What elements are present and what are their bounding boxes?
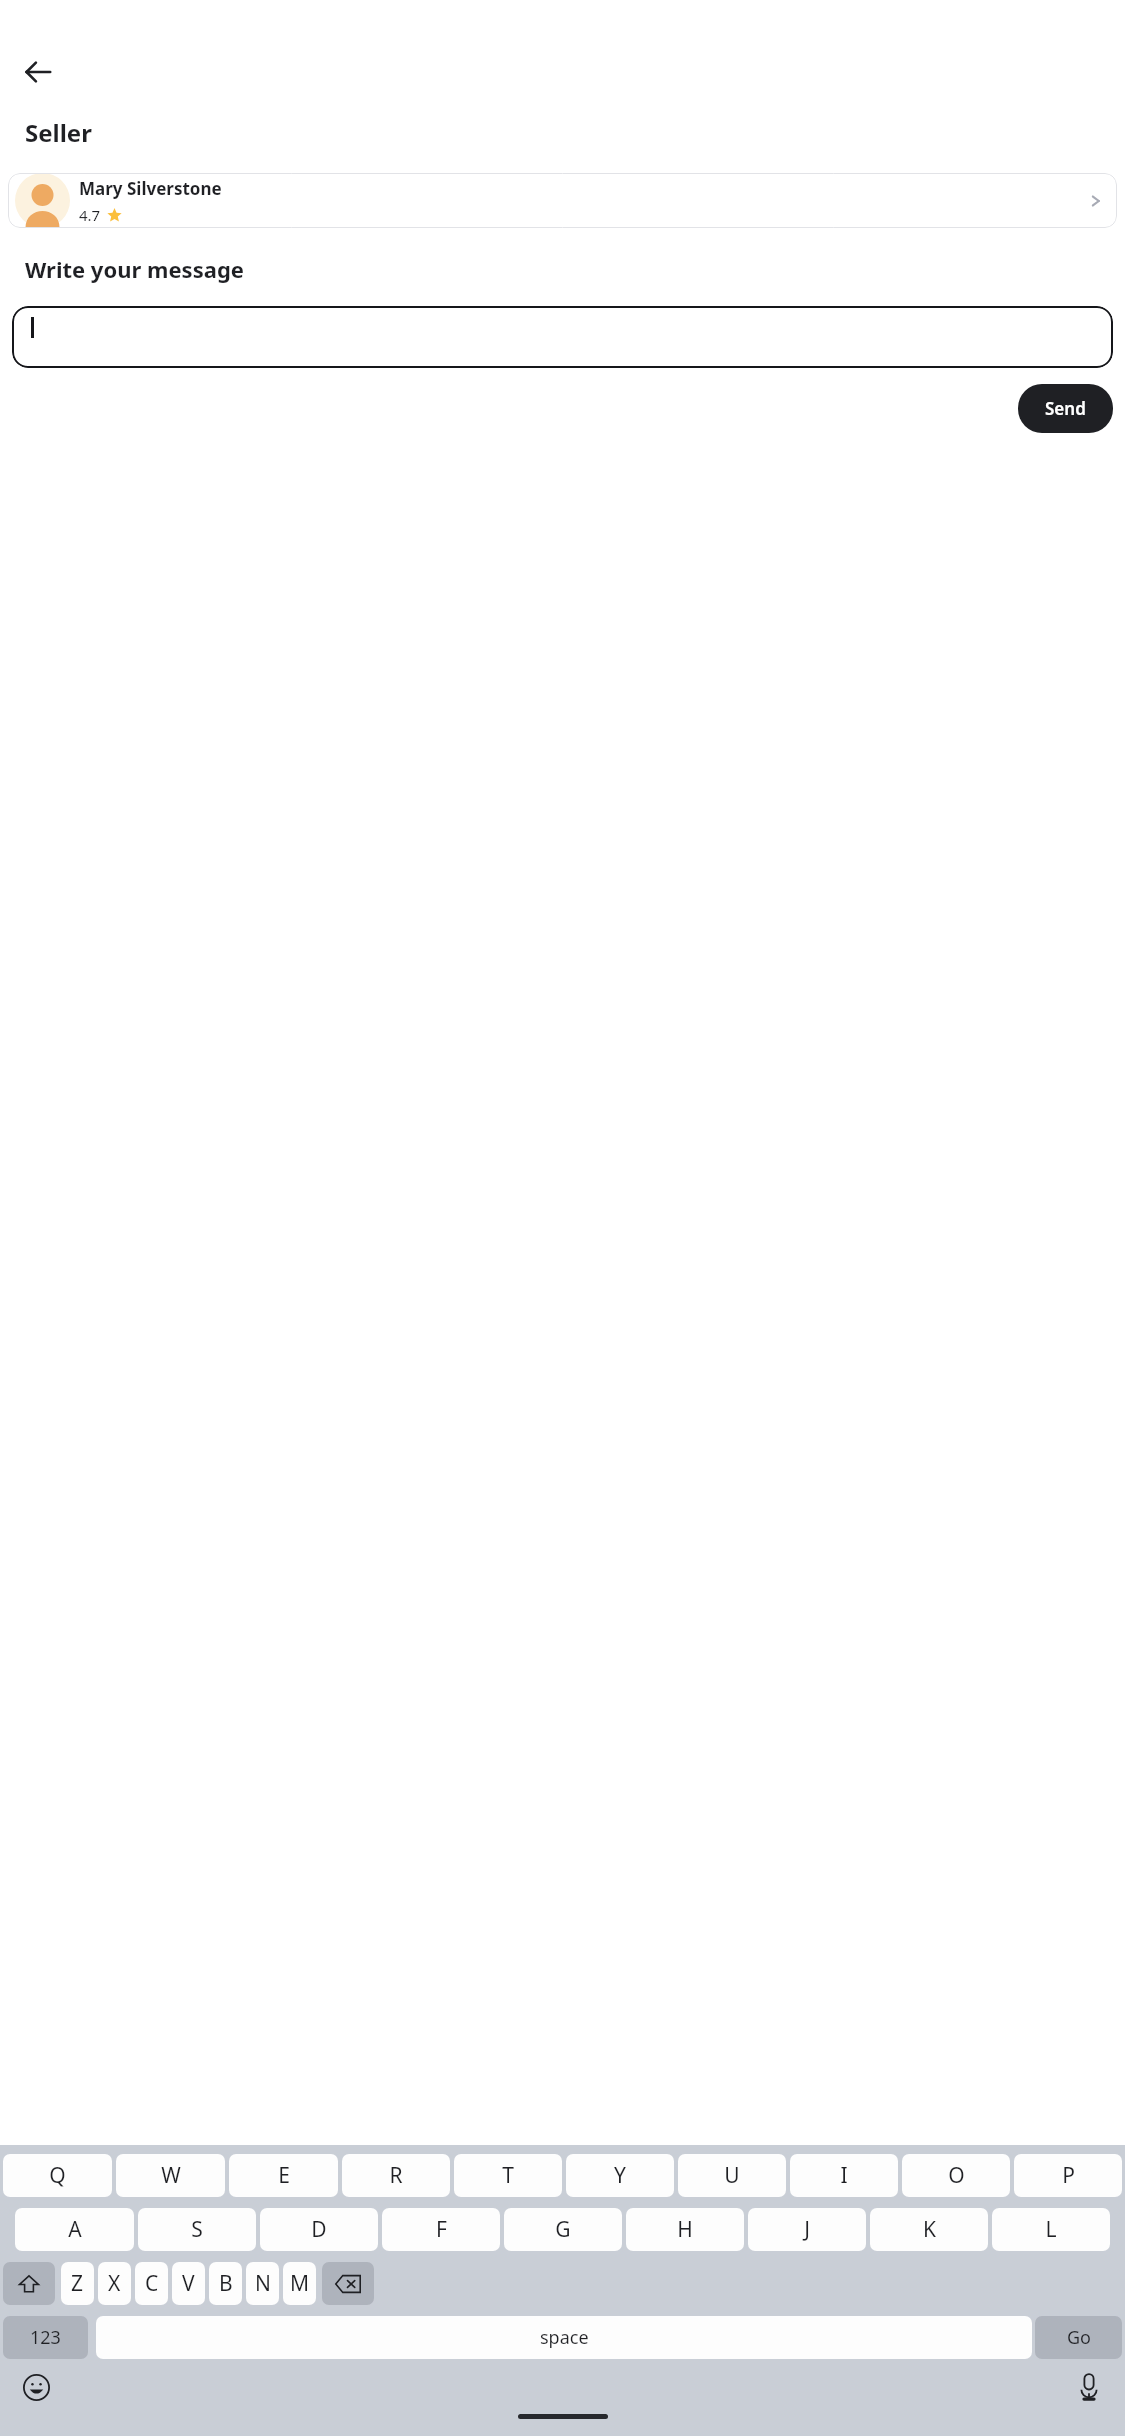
staticText: M xyxy=(290,2269,310,2298)
staticText: Z xyxy=(71,2269,84,2298)
staticText: U xyxy=(724,2161,740,2190)
staticText: P xyxy=(1062,2161,1075,2190)
button[interactable]: H xyxy=(626,2208,744,2251)
button[interactable]: Backspace xyxy=(322,2262,374,2305)
staticText: Q xyxy=(49,2161,66,2190)
staticText: 4.7 xyxy=(79,205,101,225)
staticText: C xyxy=(145,2269,159,2298)
button[interactable]: J xyxy=(748,2208,866,2251)
button[interactable]: Z xyxy=(61,2262,94,2305)
staticText: E xyxy=(278,2161,290,2190)
button[interactable]: E xyxy=(229,2154,338,2197)
staticText: Write your message xyxy=(25,254,244,284)
button[interactable]: O xyxy=(902,2154,1010,2197)
staticText: O xyxy=(948,2161,965,2190)
button[interactable]: 123 xyxy=(3,2316,88,2359)
staticText: Mary Silverstone xyxy=(79,177,222,200)
button[interactable]: C xyxy=(135,2262,168,2305)
staticText: X xyxy=(108,2269,121,2298)
button[interactable]: X xyxy=(98,2262,131,2305)
staticText: I xyxy=(840,2161,848,2190)
button[interactable]: T xyxy=(454,2154,562,2197)
staticText: L xyxy=(1045,2215,1057,2244)
button[interactable]: B xyxy=(209,2262,242,2305)
button[interactable]: V xyxy=(172,2262,205,2305)
button[interactable]: A xyxy=(15,2208,134,2251)
button[interactable]: U xyxy=(678,2154,786,2197)
staticText: R xyxy=(389,2161,403,2190)
button[interactable]: G xyxy=(504,2208,622,2251)
button[interactable]: K xyxy=(870,2208,988,2251)
staticText: S xyxy=(191,2215,203,2244)
staticText: J xyxy=(804,2215,810,2244)
staticText: T xyxy=(502,2161,514,2190)
staticText: K xyxy=(923,2215,936,2244)
staticText: Go xyxy=(1067,2325,1091,2350)
staticText: V xyxy=(182,2269,195,2298)
button[interactable]: S xyxy=(138,2208,256,2251)
staticText: Y xyxy=(614,2161,626,2190)
button[interactable]: Go xyxy=(1035,2316,1122,2359)
button[interactable]: space xyxy=(96,2316,1032,2359)
button[interactable]: N xyxy=(246,2262,279,2305)
staticText: A xyxy=(68,2215,82,2244)
button[interactable]: Shift xyxy=(3,2262,55,2305)
button[interactable]: R xyxy=(342,2154,450,2197)
staticText: space xyxy=(540,2325,589,2350)
staticText: B xyxy=(219,2269,233,2298)
staticText: N xyxy=(255,2269,271,2298)
staticText: G xyxy=(555,2215,571,2244)
staticText: F xyxy=(436,2215,447,2244)
button[interactable]: D xyxy=(260,2208,378,2251)
button[interactable]: Emoji xyxy=(12,2363,60,2411)
button[interactable]: Voice input xyxy=(1065,2363,1113,2411)
button[interactable]: L xyxy=(992,2208,1110,2251)
button[interactable]: F xyxy=(382,2208,500,2251)
staticText: Seller xyxy=(25,116,92,149)
button[interactable]: Send xyxy=(1018,384,1113,433)
button[interactable] xyxy=(12,306,1113,368)
staticText: Send xyxy=(1045,397,1086,420)
button[interactable]: Mary Silverstone xyxy=(8,173,1117,228)
staticText: W xyxy=(161,2161,181,2190)
button[interactable]: W xyxy=(116,2154,225,2197)
button[interactable]: P xyxy=(1014,2154,1122,2197)
staticText: H xyxy=(677,2215,693,2244)
button[interactable]: I xyxy=(790,2154,898,2197)
button[interactable]: Q xyxy=(3,2154,112,2197)
button[interactable]: Back xyxy=(14,48,62,96)
staticText: 123 xyxy=(30,2325,61,2350)
button[interactable]: M xyxy=(283,2262,316,2305)
button[interactable]: Y xyxy=(566,2154,674,2197)
staticText: D xyxy=(311,2215,327,2244)
